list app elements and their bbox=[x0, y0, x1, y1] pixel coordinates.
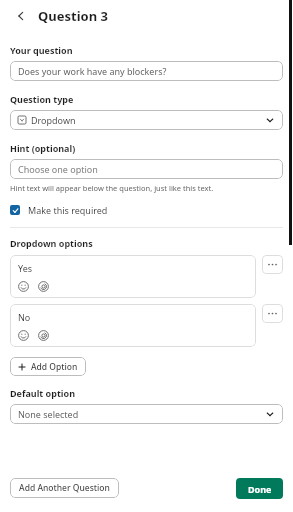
button[interactable]: Yes bbox=[10, 255, 256, 298]
staticText: Default option bbox=[10, 387, 75, 399]
staticText: None selected bbox=[18, 408, 79, 420]
staticText: Hint (optional) bbox=[10, 142, 76, 154]
button[interactable]: Mention someone bbox=[38, 330, 49, 341]
staticText: Hint text will appear below the question… bbox=[10, 183, 214, 193]
staticText: Question 3 bbox=[38, 7, 108, 25]
staticText: Your question bbox=[10, 44, 73, 56]
staticText: Choose one option bbox=[18, 163, 98, 175]
button[interactable]: Add Option bbox=[10, 357, 86, 376]
staticText: No bbox=[18, 311, 31, 323]
staticText: Dropdown options bbox=[10, 237, 93, 249]
button[interactable]: Add emoji bbox=[18, 330, 29, 341]
button[interactable]: Does your work have any blockers? bbox=[10, 61, 283, 81]
button[interactable]: More options bbox=[262, 304, 283, 323]
button[interactable]: Mention someone bbox=[38, 281, 49, 292]
button[interactable]: None selected bbox=[10, 404, 283, 424]
staticText: Add Option bbox=[31, 361, 78, 373]
button[interactable]: Choose one option bbox=[10, 159, 283, 179]
button[interactable]: No bbox=[10, 304, 256, 347]
staticText: Make this required bbox=[28, 204, 108, 216]
staticText: Yes bbox=[18, 262, 33, 274]
button[interactable]: Dropdown bbox=[10, 110, 283, 130]
button[interactable]: Add emoji bbox=[18, 281, 29, 292]
button[interactable]: Add Another Question bbox=[10, 478, 119, 498]
button[interactable]: Done bbox=[236, 478, 283, 499]
button[interactable]: Make this required bbox=[10, 202, 283, 218]
staticText: Add Another Question bbox=[19, 482, 110, 494]
staticText: Dropdown bbox=[31, 114, 76, 126]
staticText: Done bbox=[248, 483, 272, 495]
button[interactable]: Back bbox=[12, 7, 30, 25]
staticText: Does your work have any blockers? bbox=[18, 65, 167, 77]
button[interactable]: More options bbox=[262, 255, 283, 274]
staticText: Question type bbox=[10, 93, 74, 105]
